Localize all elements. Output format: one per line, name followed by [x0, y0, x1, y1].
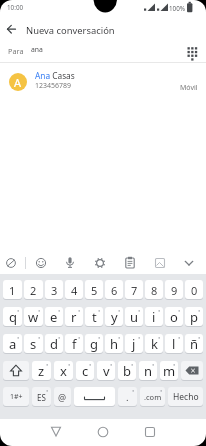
staticText: x	[60, 362, 67, 380]
staticText: ana	[31, 45, 43, 54]
staticText: e	[50, 308, 58, 326]
staticText: n	[144, 362, 153, 380]
staticText: 6	[111, 283, 118, 298]
button[interactable]: c	[76, 361, 94, 381]
button[interactable]: 6	[105, 280, 123, 300]
staticText: Hecho	[173, 391, 199, 403]
staticText: 5	[91, 283, 98, 298]
button[interactable]	[3, 361, 29, 381]
button[interactable]: s	[24, 334, 43, 354]
button[interactable]: 1	[3, 280, 22, 300]
staticText: y	[111, 308, 118, 326]
staticText: ES	[37, 392, 46, 403]
button[interactable]: b	[118, 361, 136, 381]
button[interactable]: 2	[24, 280, 43, 300]
staticText: ñ	[190, 335, 199, 353]
button[interactable]: Hecho	[168, 387, 203, 407]
button[interactable]: y	[105, 307, 123, 327]
staticText: 1	[9, 283, 16, 298]
staticText: 8	[151, 283, 158, 298]
button[interactable]	[149, 252, 171, 274]
staticText: m	[163, 362, 176, 380]
staticText: 4	[71, 283, 78, 298]
staticText: .com	[144, 392, 162, 402]
button[interactable]: 9	[165, 280, 183, 300]
button[interactable]: 5	[85, 280, 103, 300]
button[interactable]: .com	[140, 387, 165, 407]
button[interactable]: e	[45, 307, 63, 327]
button[interactable]: g	[85, 334, 103, 354]
staticText: p	[190, 308, 198, 326]
button[interactable]: d	[45, 334, 63, 354]
staticText: s	[30, 335, 37, 353]
button[interactable]: h	[105, 334, 123, 354]
staticText: z	[38, 362, 45, 380]
staticText: u	[130, 308, 139, 326]
staticText: @	[58, 391, 67, 403]
button[interactable]	[2, 22, 20, 38]
button[interactable]: i	[145, 307, 163, 327]
button[interactable]	[74, 387, 115, 407]
button[interactable]: ES	[32, 387, 51, 407]
button[interactable]: A	[0, 63, 206, 96]
button[interactable]: 3	[45, 280, 63, 300]
staticText: d	[50, 335, 58, 353]
staticText: f	[72, 335, 77, 353]
button[interactable]: 1#+	[3, 387, 29, 407]
staticText: 10:00	[7, 3, 24, 12]
button[interactable]: j	[125, 334, 143, 354]
button[interactable]: m	[160, 361, 178, 381]
button[interactable]: k	[145, 334, 163, 354]
staticText: g	[90, 335, 98, 353]
staticText: l	[172, 335, 176, 353]
button[interactable]: p	[185, 307, 203, 327]
button[interactable]: z	[32, 361, 51, 381]
button[interactable]: r	[65, 307, 83, 327]
button[interactable]: x	[54, 361, 73, 381]
button[interactable]	[59, 252, 81, 274]
button[interactable]	[30, 252, 52, 274]
staticText: o	[170, 308, 178, 326]
button[interactable]	[184, 44, 200, 62]
button[interactable]	[119, 252, 141, 274]
staticText: 7	[131, 283, 138, 298]
button[interactable]: v	[97, 361, 115, 381]
button[interactable]: n	[139, 361, 157, 381]
staticText: 100%	[169, 4, 186, 13]
button[interactable]: t	[85, 307, 103, 327]
staticText: q	[9, 308, 17, 326]
staticText: Para	[8, 46, 24, 56]
staticText: i	[152, 308, 156, 326]
staticText: 9	[171, 283, 178, 298]
button[interactable]: q	[3, 307, 22, 327]
button[interactable]	[181, 361, 203, 381]
button[interactable]: 0	[185, 280, 203, 300]
staticText: 0	[191, 283, 198, 298]
button[interactable]	[89, 252, 111, 274]
button[interactable]: u	[125, 307, 143, 327]
staticText: a	[9, 335, 17, 353]
button[interactable]	[0, 252, 22, 274]
staticText: v	[103, 362, 110, 380]
staticText: c	[82, 362, 89, 380]
button[interactable]: 8	[145, 280, 163, 300]
button[interactable]	[93, 421, 113, 441]
button[interactable]: f	[65, 334, 83, 354]
button[interactable]: 4	[65, 280, 83, 300]
button[interactable]: .	[118, 387, 137, 407]
button[interactable]: @	[54, 387, 71, 407]
staticText: 3	[51, 283, 58, 298]
button[interactable]: w	[24, 307, 43, 327]
button[interactable]: ñ	[185, 334, 203, 354]
button[interactable]: a	[3, 334, 22, 354]
button[interactable]: o	[165, 307, 183, 327]
button[interactable]: l	[165, 334, 183, 354]
staticText: .	[126, 391, 129, 404]
staticText: A	[14, 75, 22, 90]
staticText: 1#+	[10, 392, 23, 402]
button[interactable]	[46, 421, 66, 441]
staticText: w	[28, 308, 39, 326]
button[interactable]: 7	[125, 280, 143, 300]
button[interactable]	[178, 252, 200, 274]
button[interactable]	[140, 421, 160, 441]
